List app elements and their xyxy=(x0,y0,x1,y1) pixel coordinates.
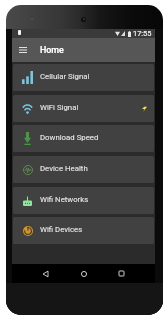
staticText: Home xyxy=(40,45,64,55)
button[interactable]: Recent apps xyxy=(112,264,131,283)
staticText: Cellular Signal xyxy=(40,72,90,81)
staticText: Wifi Devices xyxy=(40,225,83,234)
staticText: 17:55 xyxy=(133,29,152,38)
staticText: Device Health xyxy=(40,164,88,173)
staticText: Wifi Networks xyxy=(40,195,89,204)
staticText: Download Speed xyxy=(40,133,99,142)
button[interactable]: Home xyxy=(74,264,93,283)
button[interactable]: Download Speed xyxy=(13,125,154,152)
button[interactable]: Wifi Networks xyxy=(13,187,154,214)
button[interactable]: Cellular Signal xyxy=(13,64,154,91)
button[interactable]: Wifi Devices xyxy=(13,217,154,244)
button[interactable]: Open navigation menu xyxy=(15,42,31,58)
button[interactable]: Device Health xyxy=(13,156,154,183)
button[interactable]: WiFi Signal xyxy=(13,95,154,122)
button[interactable]: Back xyxy=(36,264,55,283)
staticText: WiFi Signal xyxy=(40,103,79,112)
